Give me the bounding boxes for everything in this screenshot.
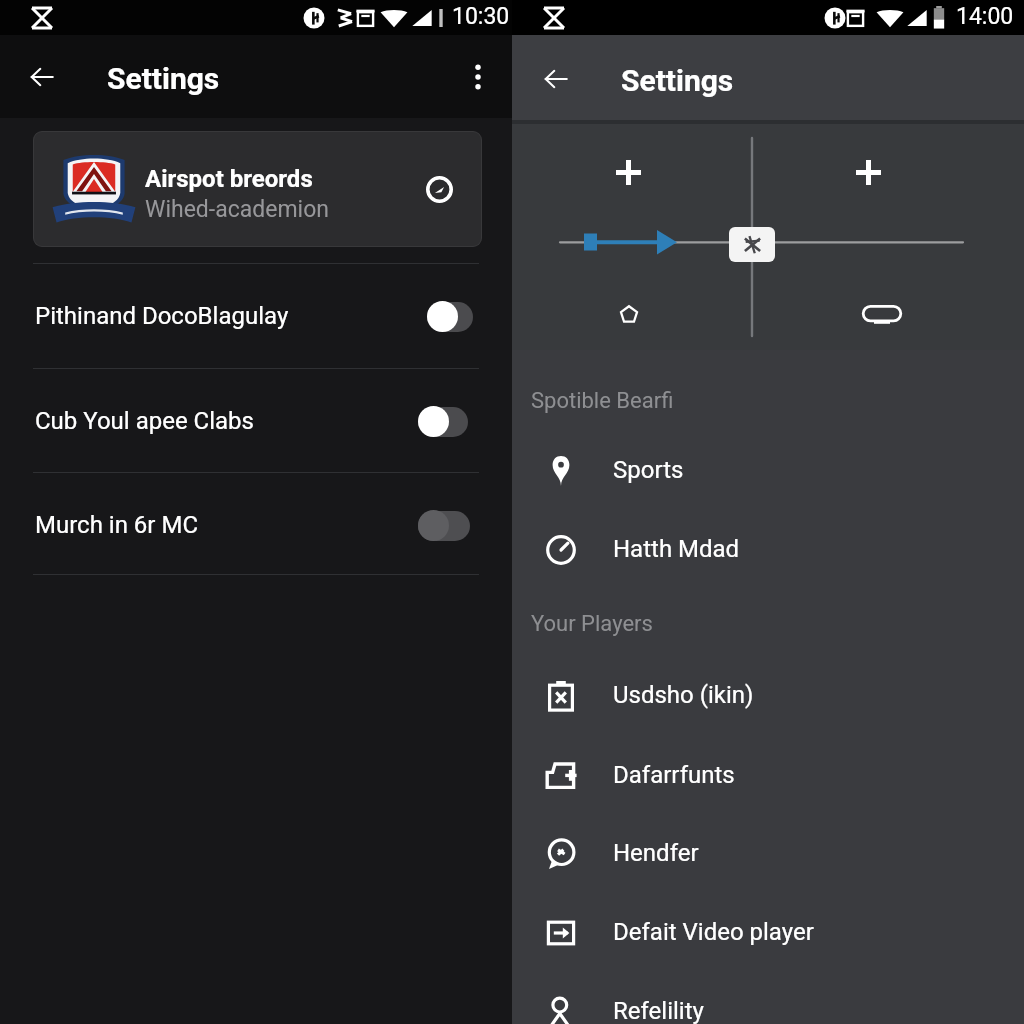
- button[interactable]: Hatth Mdad: [512, 510, 1024, 588]
- button[interactable]: More options: [458, 57, 498, 97]
- button[interactable]: Add right: [844, 148, 892, 196]
- button[interactable]: Pithinand DocoBlagulay: [0, 264, 512, 368]
- button[interactable]: Back: [20, 55, 64, 99]
- button[interactable]: Airspot breords: [33, 131, 482, 247]
- staticText: Sports: [613, 456, 684, 484]
- staticText: Your Players: [531, 611, 653, 637]
- staticText: Wihed-academion: [145, 196, 329, 223]
- staticText: Cub Youl apee Clabs: [35, 407, 254, 435]
- staticText: Usdsho (ikin): [613, 681, 754, 709]
- staticText: Pithinand DocoBlagulay: [35, 302, 289, 330]
- button[interactable]: Explore: [421, 171, 457, 207]
- staticText: Dafarrfunts: [613, 761, 735, 789]
- button[interactable]: Hendfer: [512, 814, 1024, 892]
- staticText: Spotible Bearfi: [531, 388, 674, 414]
- button[interactable]: Sports: [512, 431, 1024, 509]
- staticText: 10:30: [452, 3, 510, 30]
- staticText: Murch in 6r MC: [35, 511, 199, 539]
- staticText: Hatth Mdad: [613, 535, 740, 563]
- staticText: Hendfer: [613, 839, 699, 867]
- button[interactable]: Murch in 6r MC: [0, 473, 512, 577]
- staticText: 14:00: [956, 3, 1014, 30]
- button[interactable]: Shape: [607, 292, 651, 336]
- button[interactable]: Track: [860, 292, 904, 336]
- staticText: Airspot breords: [145, 165, 313, 193]
- staticText: Refelility: [613, 997, 704, 1024]
- staticText: Settings: [621, 63, 734, 98]
- button[interactable]: Back: [534, 57, 578, 101]
- staticText: Defait Video player: [613, 918, 814, 946]
- staticText: Settings: [107, 61, 220, 96]
- button[interactable]: Defait Video player: [512, 893, 1024, 971]
- button[interactable]: Tool: [729, 227, 775, 262]
- button[interactable]: Dafarrfunts: [512, 736, 1024, 814]
- button[interactable]: Cub Youl apee Clabs: [0, 369, 512, 473]
- button[interactable]: Add left: [604, 148, 652, 196]
- button[interactable]: Refelility: [512, 972, 1024, 1024]
- button[interactable]: Usdsho (ikin): [512, 656, 1024, 734]
